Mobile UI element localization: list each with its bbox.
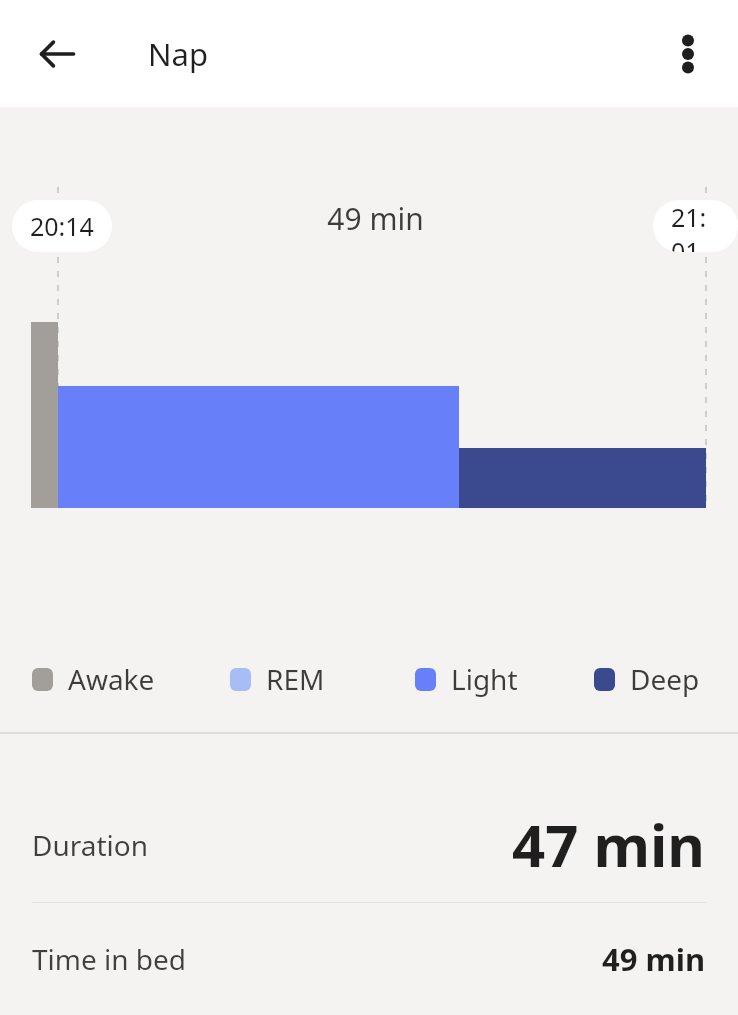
staticText: 47 min [512, 805, 706, 884]
staticText: Awake [68, 660, 155, 698]
button[interactable]: More options [656, 22, 720, 86]
button[interactable]: Duration [0, 786, 738, 903]
staticText: Deep [630, 660, 700, 698]
staticText: Duration [32, 826, 149, 864]
staticText: Light [451, 660, 518, 698]
button[interactable]: Back [22, 19, 92, 89]
button[interactable]: Light [415, 660, 518, 698]
button[interactable]: Awake [32, 660, 155, 698]
staticText: 49 min [602, 938, 706, 980]
staticText: 20:14 [30, 209, 94, 243]
button[interactable]: REM [230, 660, 325, 698]
staticText: Time in bed [32, 940, 187, 978]
staticText: Nap [148, 33, 209, 75]
staticText: REM [266, 660, 325, 698]
staticText: 49 min [327, 198, 424, 239]
button[interactable]: Deep [594, 660, 700, 698]
staticText: 21:01 [671, 200, 720, 252]
button[interactable]: Time in bed [0, 903, 738, 1015]
